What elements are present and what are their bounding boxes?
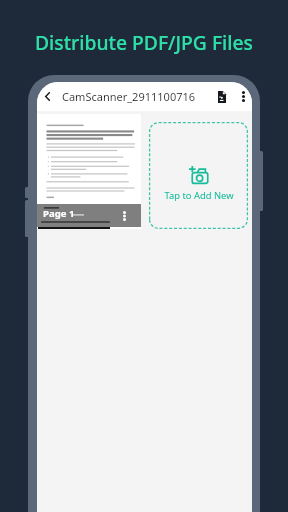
staticText: Page 1 (43, 207, 75, 220)
button[interactable]: Tap to Add New (149, 122, 248, 229)
button[interactable]: Back (37, 82, 57, 111)
button[interactable]: More options (235, 82, 252, 111)
button[interactable]: Page 1 (37, 114, 141, 229)
staticText: CamScanner_2911100716 (62, 89, 196, 104)
button[interactable]: Export as PDF (211, 86, 233, 108)
staticText: Tap to Add New (164, 189, 234, 202)
staticText: Distribute PDF/JPG Files (35, 29, 253, 55)
button[interactable]: Page options (116, 208, 132, 224)
